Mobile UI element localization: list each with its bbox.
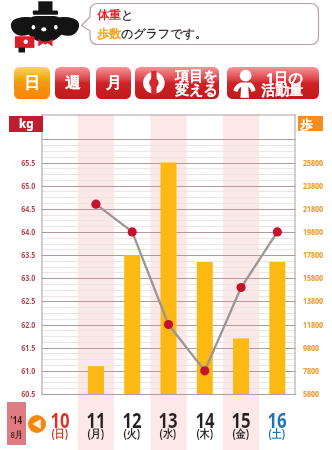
staticText: 体重 — [97, 7, 121, 22]
staticText: (木) — [196, 426, 214, 442]
button[interactable]: 14 — [187, 398, 223, 450]
staticText: 15800 — [303, 272, 323, 284]
staticText: 14 — [195, 406, 215, 435]
button[interactable]: Previous day — [28, 415, 46, 433]
staticText: 週 — [65, 73, 81, 93]
staticText: 歩 — [300, 117, 313, 132]
button[interactable]: 週 — [55, 67, 90, 99]
staticText: 活動量 — [261, 82, 303, 99]
staticText: 7800 — [303, 365, 319, 377]
staticText: 17800 — [303, 249, 323, 261]
staticText: 62.0 — [21, 319, 36, 331]
staticText: 11800 — [303, 319, 323, 331]
button[interactable]: 13 — [150, 398, 186, 450]
staticText: のグラフです。 — [121, 26, 207, 41]
staticText: 13800 — [303, 295, 323, 307]
staticText: 65.5 — [21, 157, 36, 169]
staticText: 62.5 — [21, 295, 36, 307]
staticText: 変える — [175, 82, 218, 99]
staticText: 63.0 — [21, 272, 36, 284]
staticText: 1日の — [266, 68, 303, 87]
staticText: (日) — [51, 426, 69, 442]
staticText: 10 — [50, 406, 70, 435]
staticText: 60.5 — [21, 388, 36, 400]
staticText: 11 — [86, 406, 106, 435]
staticText: (水) — [159, 426, 177, 442]
staticText: 5800 — [303, 388, 319, 400]
button[interactable]: 項目を — [135, 67, 219, 99]
staticText: 19800 — [303, 226, 323, 238]
button[interactable]: 日 — [14, 67, 50, 99]
staticText: 63.5 — [21, 249, 36, 261]
staticText: 61.5 — [21, 342, 36, 354]
staticText: 64.0 — [21, 226, 36, 238]
staticText: 日 — [24, 73, 40, 93]
staticText: 15 — [231, 406, 251, 435]
button[interactable]: 12 — [114, 398, 150, 450]
staticText: 23800 — [303, 180, 323, 192]
staticText: 61.0 — [21, 365, 36, 377]
button[interactable]: 11 — [78, 398, 114, 450]
button[interactable]: 1日の — [227, 67, 319, 99]
staticText: (金) — [232, 426, 250, 442]
staticText: 21800 — [303, 203, 323, 215]
button[interactable]: 10 — [42, 398, 78, 450]
staticText: 25800 — [303, 157, 323, 169]
staticText: 月 — [106, 73, 122, 93]
button[interactable]: 15 — [223, 398, 259, 450]
staticText: 64.5 — [21, 203, 36, 215]
staticText: 12 — [122, 406, 142, 435]
staticText: 歩数 — [97, 26, 121, 41]
staticText: 16 — [267, 406, 287, 435]
staticText: 8月 — [10, 428, 22, 440]
button[interactable]: 月 — [96, 67, 131, 99]
staticText: と — [121, 7, 134, 22]
staticText: 13 — [158, 406, 178, 435]
staticText: (土) — [268, 426, 286, 442]
button[interactable]: 16 — [259, 398, 295, 450]
staticText: 項目を — [175, 68, 218, 86]
staticText: (火) — [123, 426, 141, 442]
staticText: kg — [19, 116, 34, 132]
staticText: 65.0 — [21, 180, 36, 192]
staticText: (月) — [87, 426, 105, 442]
staticText: '14 — [10, 413, 23, 425]
staticText: 9800 — [303, 342, 319, 354]
